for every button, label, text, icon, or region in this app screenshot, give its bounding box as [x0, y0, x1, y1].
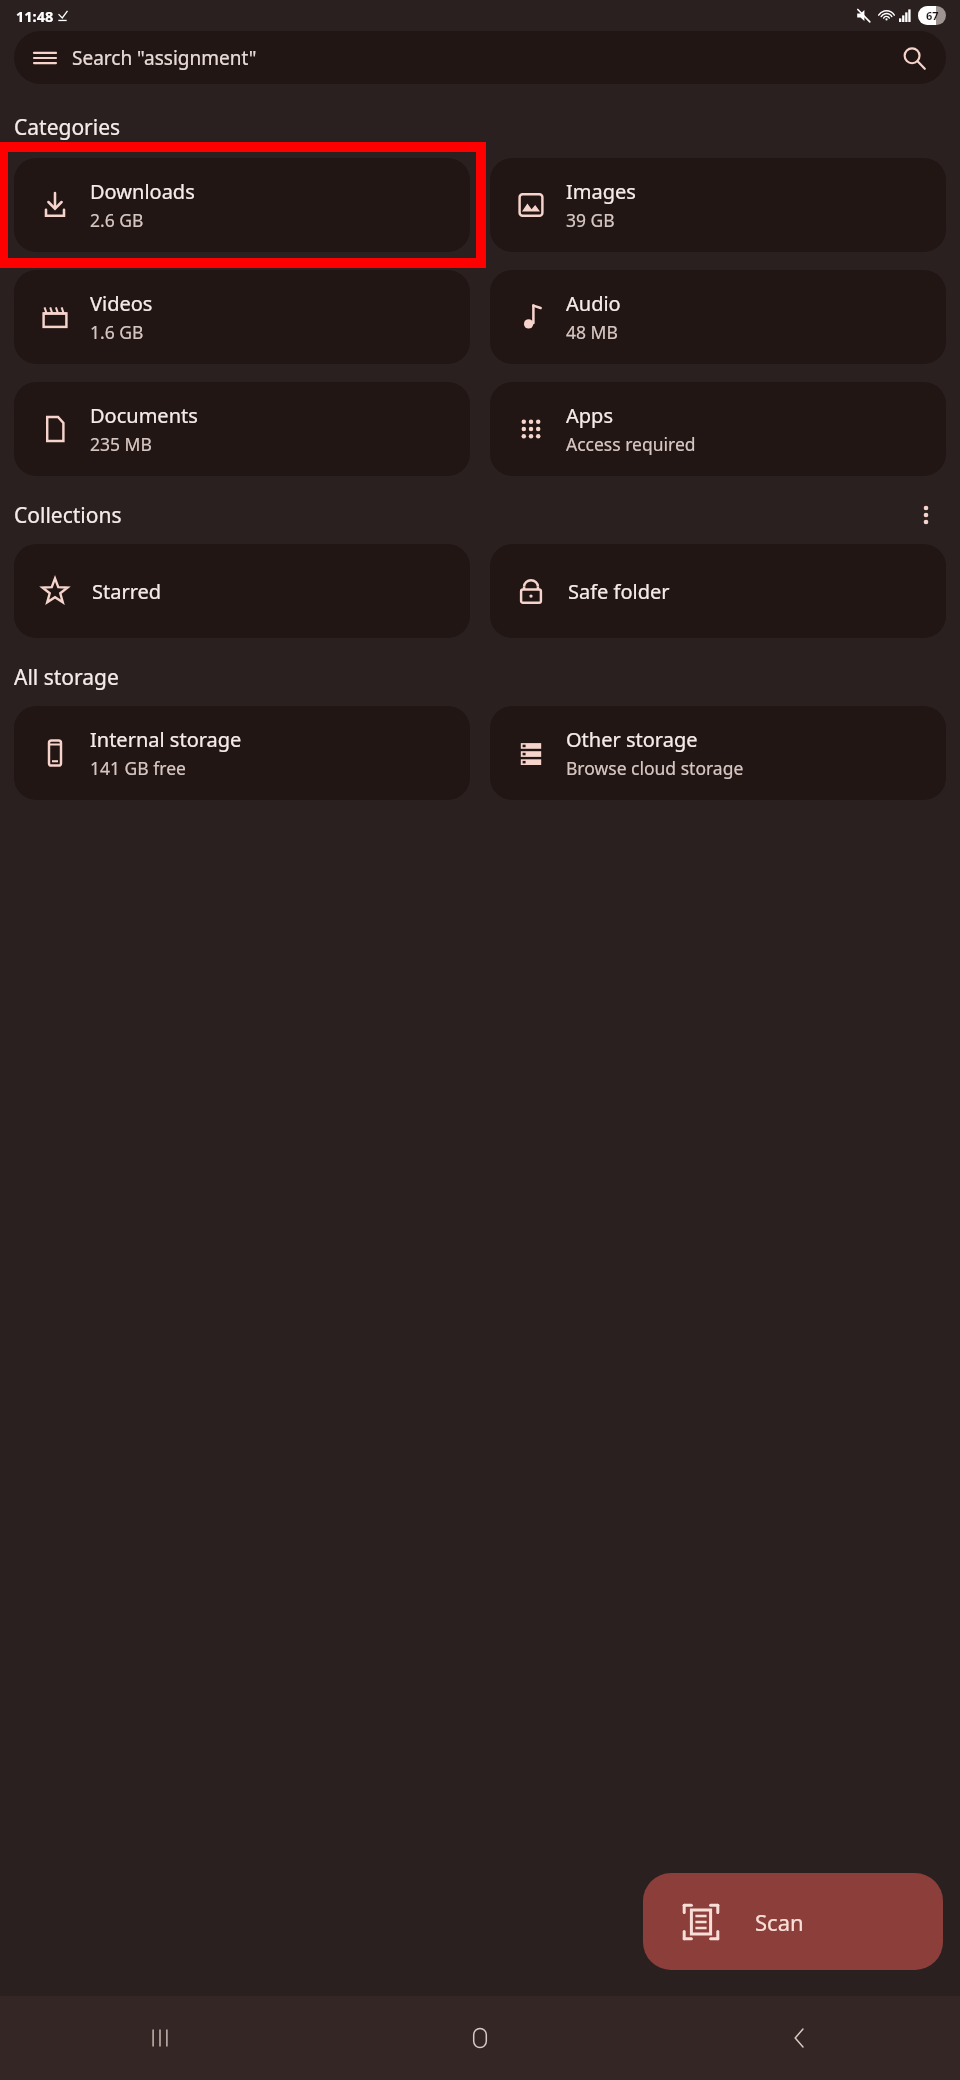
staticText: Documents [90, 402, 198, 429]
staticText: Audio [566, 290, 621, 317]
staticText: Browse cloud storage [566, 756, 744, 780]
other: Menu [34, 47, 56, 69]
button[interactable]: Apps [490, 382, 946, 476]
button[interactable]: Home [320, 1996, 640, 2080]
staticText: Starred [92, 578, 162, 605]
staticText: 11:48 [16, 6, 54, 26]
staticText: Apps [566, 402, 613, 429]
staticText: 2.6 GB [90, 208, 144, 232]
staticText: 39 GB [566, 208, 615, 232]
staticText: 235 MB [90, 432, 152, 456]
staticText: Search "assignment" [72, 45, 257, 71]
button[interactable]: Images [490, 158, 946, 252]
staticText: Scan [755, 1907, 804, 1937]
button[interactable]: Scan [643, 1873, 943, 1970]
staticText: 67 [926, 8, 939, 23]
button[interactable]: Documents [14, 382, 470, 476]
staticText: Collections [14, 501, 122, 530]
button[interactable]: More options [906, 498, 946, 532]
button[interactable]: Downloads [14, 158, 470, 252]
button[interactable]: Other storage [490, 706, 946, 800]
staticText: 48 MB [566, 320, 618, 344]
staticText: Downloads [90, 178, 195, 205]
button[interactable]: Starred [14, 544, 470, 638]
staticText: Categories [14, 113, 121, 142]
button[interactable]: Back [640, 1996, 960, 2080]
button[interactable]: Menu [14, 31, 946, 84]
staticText: Other storage [566, 726, 698, 753]
button[interactable]: Audio [490, 270, 946, 364]
staticText: Videos [90, 290, 153, 317]
staticText: All storage [14, 663, 119, 692]
staticText: Images [566, 178, 636, 205]
staticText: 1.6 GB [90, 320, 144, 344]
other: Search [902, 46, 926, 70]
staticText: Safe folder [568, 578, 670, 605]
button[interactable]: Recents [0, 1996, 320, 2080]
button[interactable]: Internal storage [14, 706, 470, 800]
button[interactable]: Videos [14, 270, 470, 364]
button[interactable]: Safe folder [490, 544, 946, 638]
staticText: Access required [566, 432, 696, 456]
staticText: Internal storage [90, 726, 242, 753]
staticText: 141 GB free [90, 756, 186, 780]
